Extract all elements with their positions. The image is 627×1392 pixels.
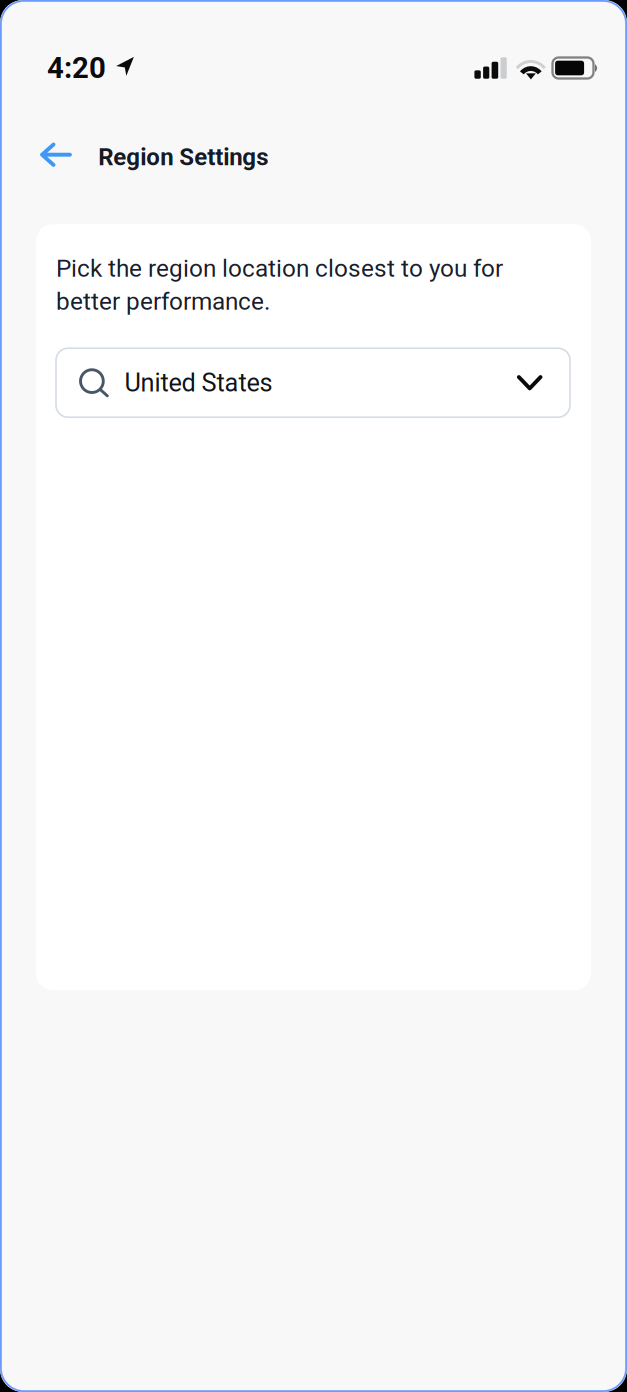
staticText: Region Settings <box>98 143 268 171</box>
button[interactable]: Back <box>0 129 86 185</box>
staticText: Pick the region location closest to you … <box>56 254 503 316</box>
button[interactable]: United States <box>56 348 570 417</box>
staticText: United States <box>124 368 272 398</box>
staticText: 4:20 <box>47 51 106 85</box>
